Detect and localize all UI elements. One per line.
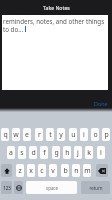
staticText: b (63, 166, 68, 175)
staticText: a (9, 148, 13, 157)
button[interactable]: a (7, 146, 15, 159)
staticText: t (49, 130, 52, 139)
button[interactable]: l (97, 146, 105, 159)
button[interactable]: d (29, 146, 37, 159)
button[interactable]: n (72, 164, 80, 177)
button[interactable]: Done (93, 100, 109, 107)
button[interactable]: c (38, 164, 46, 177)
button[interactable]: b (61, 164, 69, 177)
staticText: x (29, 166, 33, 175)
staticText: r (38, 130, 41, 139)
button[interactable]: t (46, 128, 54, 141)
button[interactable]: w (12, 128, 20, 141)
staticText: j (77, 148, 79, 157)
button[interactable]: f (40, 146, 48, 159)
button[interactable]: h (63, 146, 71, 159)
button[interactable]: Shift (1, 164, 12, 177)
staticText: m (84, 166, 91, 175)
staticText: u (71, 130, 76, 139)
button[interactable]: g (52, 146, 60, 159)
staticText: i (83, 130, 85, 139)
staticText: l (100, 148, 102, 157)
button[interactable]: x (27, 164, 35, 177)
button[interactable]: v (49, 164, 57, 177)
button[interactable]: Switch keyboard (14, 181, 23, 194)
button[interactable]: p (102, 128, 110, 141)
button[interactable]: o (91, 128, 99, 141)
staticText: q (3, 130, 8, 139)
staticText: y (59, 130, 63, 139)
staticText: reminders, notes, and other things (3, 17, 105, 25)
staticText: v (51, 166, 55, 175)
staticText: n (74, 166, 79, 175)
staticText: f (43, 148, 46, 157)
button[interactable]: m (83, 164, 91, 177)
staticText: space (46, 185, 58, 191)
button[interactable]: r (35, 128, 43, 141)
button[interactable]: z (16, 164, 24, 177)
staticText: h (65, 148, 70, 157)
staticText: g (54, 148, 59, 157)
button[interactable]: reminders, notes, and other things (2, 15, 108, 90)
staticText: k (87, 148, 91, 157)
button[interactable]: Take Notes (43, 4, 70, 11)
button[interactable]: i (80, 128, 88, 141)
button[interactable]: e (23, 128, 31, 141)
button[interactable]: space (26, 181, 77, 194)
staticText: 123 (3, 185, 11, 191)
staticText: Done (94, 100, 108, 107)
button[interactable]: Backspace (96, 164, 108, 177)
button[interactable]: return (81, 181, 110, 194)
button[interactable]: j (74, 146, 82, 159)
staticText: d (31, 148, 36, 157)
button[interactable]: y (57, 128, 65, 141)
staticText: o (93, 130, 98, 139)
button[interactable]: k (85, 146, 93, 159)
staticText: c (40, 166, 44, 175)
button[interactable]: u (69, 128, 77, 141)
staticText: return (89, 185, 103, 191)
staticText: s (20, 148, 24, 157)
button[interactable]: q (1, 128, 9, 141)
staticText: e (25, 130, 29, 139)
staticText: w (13, 130, 19, 139)
staticText: z (18, 166, 22, 175)
staticText: to do... (3, 25, 24, 33)
button[interactable]: 123 (1, 181, 12, 194)
staticText: p (104, 130, 109, 139)
button[interactable]: s (18, 146, 26, 159)
